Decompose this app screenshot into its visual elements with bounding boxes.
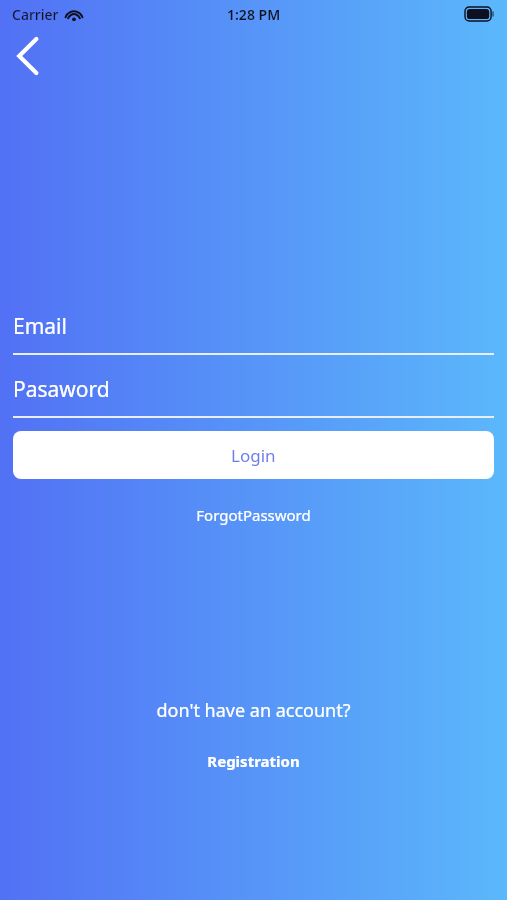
button[interactable]: Pasaword xyxy=(0,375,507,418)
staticText: Registration xyxy=(207,751,300,771)
staticText: don't have an account? xyxy=(0,698,507,723)
button[interactable]: Back xyxy=(4,32,52,80)
staticText: Email xyxy=(13,312,67,341)
button[interactable]: Email xyxy=(0,312,507,355)
staticText: ForgotPassword xyxy=(196,505,311,525)
button[interactable]: ForgotPassword xyxy=(186,501,321,529)
button[interactable]: Registration xyxy=(197,747,310,775)
staticText: Carrier xyxy=(12,5,59,24)
staticText: Login xyxy=(231,444,276,467)
button[interactable]: Login xyxy=(13,431,494,479)
staticText: 1:28 PM xyxy=(227,5,281,24)
staticText: Pasaword xyxy=(13,375,110,404)
